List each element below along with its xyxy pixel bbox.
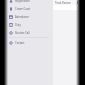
staticText: Contact — [15, 41, 25, 45]
button[interactable]: Crown Court — [4, 5, 53, 13]
button[interactable]: More options — [76, 1, 79, 4]
button[interactable]: Contact — [4, 39, 53, 47]
button[interactable]: Routine Call — [4, 29, 53, 37]
staticText: Crown Court — [15, 7, 31, 11]
staticText: Duty — [15, 23, 21, 27]
staticText: Track Review — [55, 1, 71, 5]
staticText: Registration — [15, 0, 30, 3]
button[interactable]: Duty — [4, 21, 53, 29]
staticText: Routine Call — [15, 31, 30, 35]
staticText: Attendance — [15, 15, 29, 19]
button[interactable]: Attendance — [4, 13, 53, 21]
button[interactable]: Registration — [4, 0, 53, 5]
